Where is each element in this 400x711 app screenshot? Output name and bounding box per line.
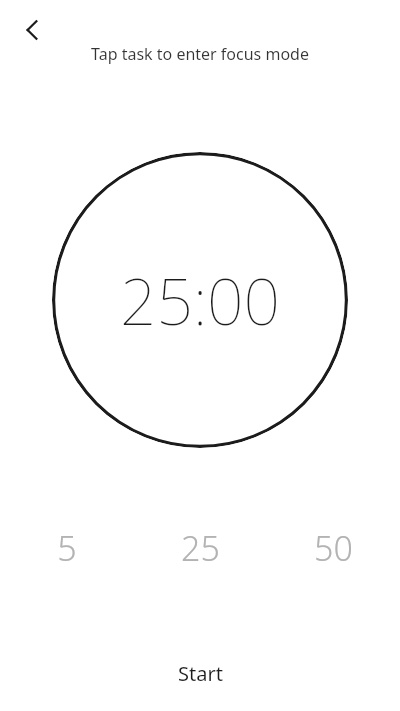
- staticText: Start: [178, 660, 223, 687]
- staticText: Tap task to enter focus mode: [91, 43, 309, 65]
- button[interactable]: 25:00: [52, 152, 348, 448]
- staticText: 25:00: [120, 257, 280, 344]
- staticText: 50: [314, 525, 353, 571]
- staticText: 5: [57, 525, 77, 571]
- button[interactable]: 25: [134, 520, 267, 576]
- button[interactable]: Back: [8, 6, 56, 54]
- button[interactable]: 50: [267, 520, 400, 576]
- staticText: 25: [181, 525, 220, 571]
- button[interactable]: 5: [0, 520, 134, 576]
- button[interactable]: Start: [130, 651, 270, 695]
